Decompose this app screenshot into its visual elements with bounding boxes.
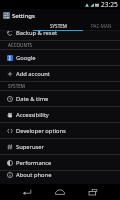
button[interactable]: Google	[0, 50, 120, 65]
button[interactable]: Settings	[0, 9, 120, 22]
button[interactable]: Add account	[0, 66, 120, 81]
button[interactable]: Home	[46, 184, 74, 200]
staticText: PAC-MAN	[91, 23, 112, 29]
button[interactable]: Back	[13, 184, 41, 200]
staticText: Superuser	[16, 143, 45, 151]
button[interactable]: PAC-MAN	[83, 22, 120, 30]
staticText: About phone	[16, 171, 52, 178]
button[interactable]: Developer options	[0, 123, 120, 138]
staticText: Add account	[16, 70, 50, 78]
staticText: Developer options	[16, 127, 66, 135]
staticText: ACCOUNTS	[8, 42, 32, 48]
staticText: Settings	[12, 12, 35, 20]
staticText: Date & time	[16, 95, 49, 103]
button[interactable]: About phone	[0, 171, 120, 178]
staticText: Backup & reset	[16, 31, 57, 37]
staticText: Google	[16, 54, 36, 62]
staticText: SYSTEM	[50, 23, 67, 29]
staticText: Performance	[16, 159, 52, 167]
staticText: 23:25	[101, 0, 118, 9]
button[interactable]: Backup & reset	[0, 31, 120, 40]
button[interactable]: Performance	[0, 155, 120, 170]
button[interactable]: SYSTEM	[33, 22, 83, 30]
button[interactable]: Date & time	[0, 91, 120, 106]
staticText: Accessibility	[16, 111, 49, 119]
button[interactable]: Accessibility	[0, 107, 120, 122]
staticText: SYSTEM	[8, 83, 25, 89]
button[interactable]: Recents	[79, 184, 107, 200]
button[interactable]: Superuser	[0, 139, 120, 154]
